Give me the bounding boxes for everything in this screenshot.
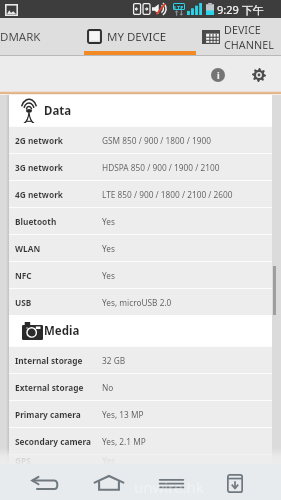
staticText: DMARK (0, 29, 41, 45)
button[interactable]: Recent apps (140, 464, 203, 500)
button[interactable]: Settings (246, 56, 271, 95)
button[interactable]: 2G network (9, 127, 272, 153)
staticText: Yes (102, 243, 115, 254)
button[interactable]: Internal storage (9, 347, 272, 373)
staticText: WLAN (15, 243, 41, 254)
staticText: Yes, microUSB 2.0 (102, 297, 172, 308)
button[interactable]: NFC (9, 262, 272, 288)
staticText: Yes (102, 270, 115, 281)
staticText: LTE 850 / 900 / 1800 / 2100 / 2600 (102, 189, 233, 200)
staticText: Yes (102, 455, 115, 464)
staticText: GPS (15, 455, 31, 464)
staticText: 2G network (15, 135, 63, 146)
staticText: CHANNEL (224, 37, 274, 52)
staticText: No (102, 382, 114, 393)
staticText: Data (44, 103, 72, 119)
button[interactable]: Media (9, 315, 272, 346)
button[interactable]: Secondary camera (9, 428, 272, 454)
staticText: HDSPA 850 / 900 / 1900 / 2100 (102, 162, 220, 173)
staticText: USB (15, 297, 32, 308)
button[interactable]: DEVICE (196, 18, 274, 56)
button[interactable]: WLAN (9, 235, 272, 261)
staticText: i (217, 69, 220, 81)
staticText: Yes, 2.1 MP (102, 436, 146, 447)
staticText: Media (44, 323, 80, 339)
staticText: Yes (102, 216, 115, 227)
staticText: unwire.hk (134, 477, 204, 497)
button[interactable]: Data (9, 95, 272, 126)
staticText: MY DEVICE (107, 29, 167, 45)
button[interactable]: 3G network (9, 154, 272, 180)
staticText: 3G network (15, 162, 63, 173)
button[interactable]: Back (14, 464, 77, 500)
staticText: DEVICE (224, 22, 261, 37)
staticText: 32 GB (102, 355, 126, 366)
button[interactable]: Info (205, 56, 230, 95)
staticText: Secondary camera (15, 436, 92, 447)
staticText: 9:29 下午 (217, 2, 264, 17)
staticText: NFC (15, 270, 32, 281)
button[interactable]: Screenshot (203, 464, 266, 500)
button[interactable]: USB (9, 289, 272, 315)
staticText: LTE (174, 4, 184, 9)
staticText: Yes, 13 MP (102, 409, 144, 420)
staticText: Internal storage (15, 355, 83, 366)
staticText: Primary camera (15, 409, 81, 420)
button[interactable]: 4G network (9, 181, 272, 207)
button[interactable]: DMARK (0, 18, 84, 56)
button[interactable]: Primary camera (9, 401, 272, 427)
staticText: 4G network (15, 189, 63, 200)
button[interactable]: External storage (9, 374, 272, 400)
staticText: Bluetooth (15, 216, 57, 227)
staticText: GSM 850 / 900 / 1800 / 1900 (102, 135, 211, 146)
staticText: External storage (15, 382, 84, 393)
button[interactable]: Home (77, 464, 140, 500)
button[interactable]: Bluetooth (9, 208, 272, 234)
button[interactable]: MY DEVICE (84, 18, 196, 56)
